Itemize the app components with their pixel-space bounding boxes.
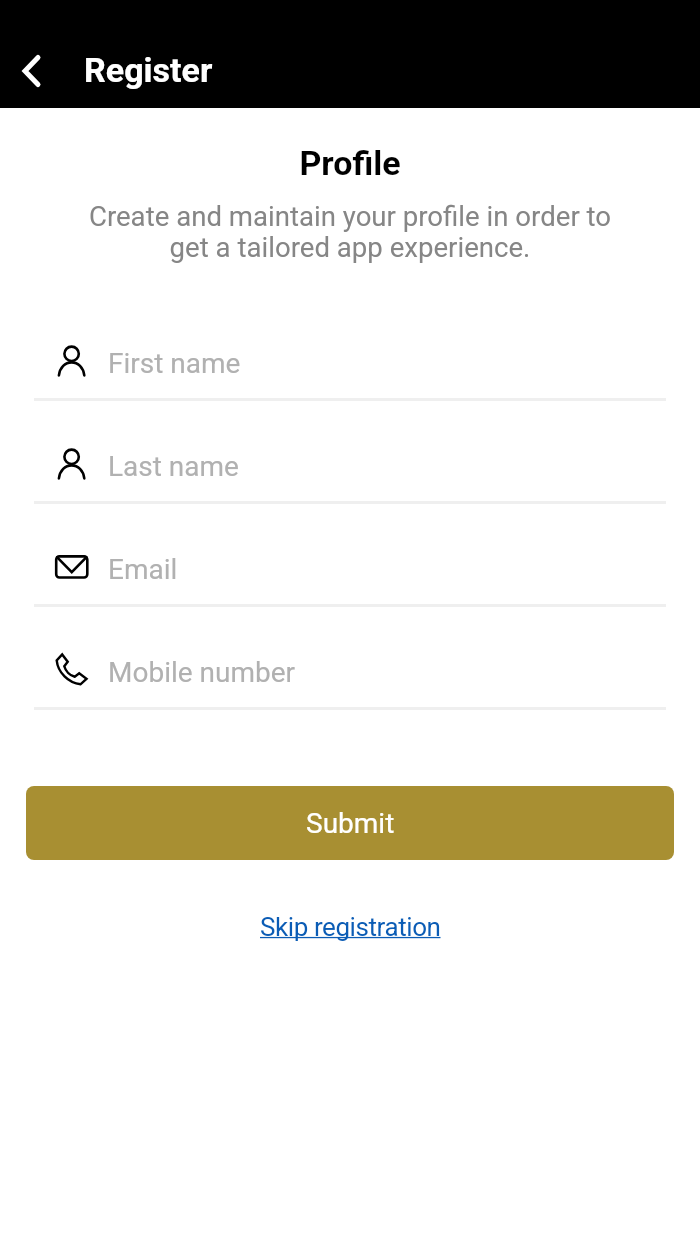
staticText: Register: [84, 50, 213, 90]
button[interactable]: Submit: [26, 786, 674, 860]
staticText: Create and maintain your profile in orde…: [77, 200, 623, 263]
button[interactable]: Mobile number: [0, 638, 700, 741]
staticText: First name: [108, 347, 241, 380]
staticText: Submit: [306, 807, 395, 840]
staticText: Mobile number: [108, 656, 296, 689]
staticText: Email: [108, 553, 178, 586]
button[interactable]: Skip registration: [246, 902, 455, 952]
staticText: Profile: [0, 143, 700, 183]
button[interactable]: Last name: [0, 432, 700, 535]
button[interactable]: Email: [0, 535, 700, 638]
staticText: Skip registration: [260, 912, 441, 942]
button[interactable]: Back: [3, 45, 55, 97]
staticText: Last name: [108, 450, 239, 483]
button[interactable]: First name: [0, 329, 700, 432]
